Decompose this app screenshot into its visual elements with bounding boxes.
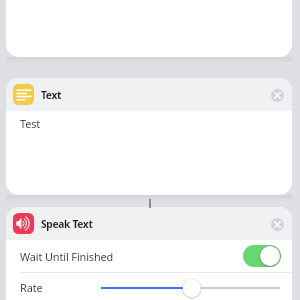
button[interactable] (101, 278, 280, 298)
staticText: Wait Until Finished (20, 249, 114, 264)
button[interactable]: Wait Until Finished (6, 240, 292, 272)
staticText: Rate (20, 280, 43, 295)
staticText: Speak Text (41, 217, 93, 231)
staticText: Text (41, 88, 62, 102)
button[interactable]: Rate (6, 273, 292, 300)
button[interactable]: Remove action (267, 214, 287, 234)
staticText: Test (20, 116, 41, 131)
button[interactable]: Remove action (267, 85, 287, 105)
button[interactable]: Wait Until Finished toggle (243, 245, 281, 267)
button[interactable]: Text (6, 78, 292, 111)
button[interactable]: Speak Text (6, 207, 292, 240)
